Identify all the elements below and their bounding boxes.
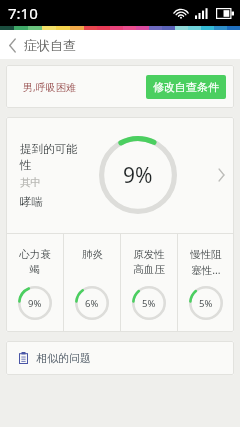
other: Back [9,39,17,52]
button[interactable]: Back [0,33,86,57]
button[interactable]: 心力衰 [6,234,63,332]
staticText: 9% [28,297,42,310]
staticText: 其中 [20,176,41,189]
button[interactable]: 肺炎 [64,234,120,332]
staticText: 5% [142,297,156,310]
staticText: 相似的问题 [36,351,91,365]
staticText: 哮喘 [20,195,43,209]
staticText: 原发性 [133,248,165,261]
button[interactable]: 修改自查条件 [146,75,226,99]
button[interactable]: 相似的问题 [6,341,234,375]
staticText: 竭 [29,263,40,276]
staticText: 塞性… [191,263,221,277]
button[interactable]: 原发性 [121,234,177,332]
staticText: 6% [85,297,99,310]
button[interactable]: 慢性阻 [178,234,234,332]
other: Details [218,169,225,181]
staticText: 心力衰 [19,248,51,261]
staticText: 9% [123,161,153,190]
staticText: 慢性阻 [190,248,222,261]
staticText: 症状自查 [24,37,76,53]
staticText: 5% [199,297,213,310]
staticText: 男,呼吸困难 [23,80,76,94]
staticText: 高血压 [133,263,165,276]
staticText: 7:10 [8,3,38,23]
staticText: 性 [20,158,32,172]
staticText: 提到的可能 [20,142,78,156]
button[interactable]: 提到的可能 [6,117,234,233]
staticText: 肺炎 [82,248,103,261]
staticText: 修改自查条件 [153,80,219,94]
